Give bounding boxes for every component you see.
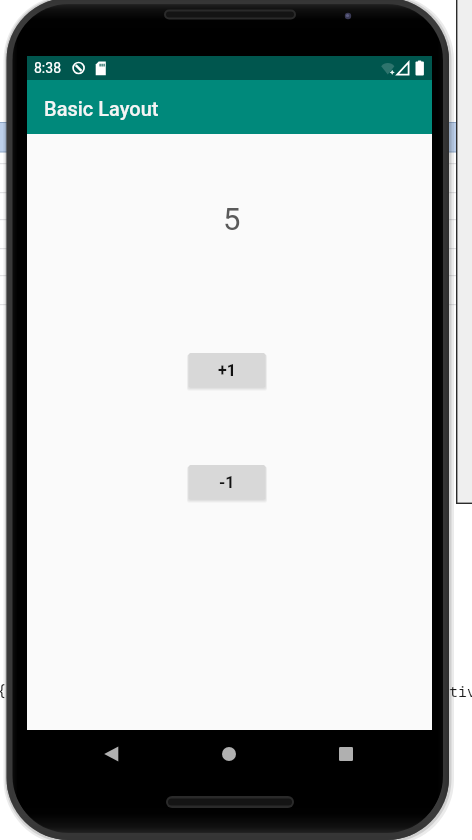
staticText: -1 [219, 473, 235, 492]
button[interactable]: Back [90, 733, 132, 775]
staticText: +1 [218, 361, 236, 380]
staticText: Basic Layout [44, 97, 159, 120]
button[interactable]: +1 [189, 353, 265, 387]
staticText: 8:38 [34, 60, 61, 76]
button[interactable]: Home [208, 733, 250, 775]
button[interactable]: -1 [189, 465, 265, 499]
staticText: 5 [223, 201, 241, 237]
button[interactable]: Recent apps [325, 733, 367, 775]
staticText: { [0, 679, 7, 701]
staticText: tiv [449, 681, 472, 701]
